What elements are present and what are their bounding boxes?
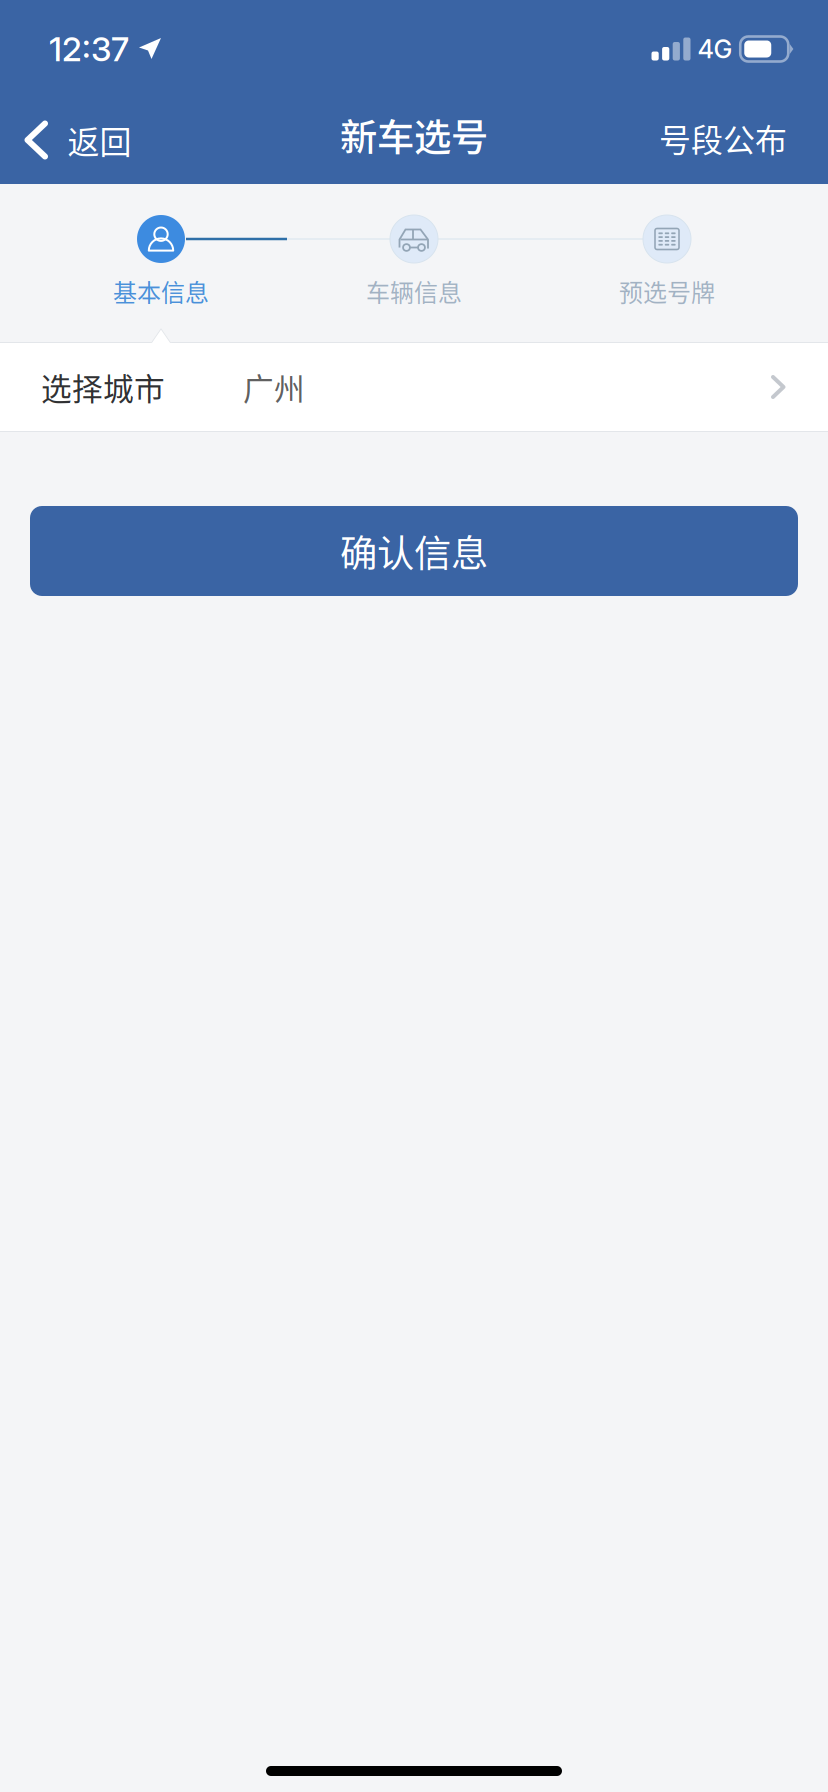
- staticText: 新车选号: [340, 108, 488, 162]
- staticText: 12:37: [49, 29, 129, 69]
- button[interactable]: 号段公布: [637, 91, 828, 185]
- staticText: 确认信息: [340, 524, 488, 578]
- staticText: 号段公布: [659, 115, 787, 161]
- staticText: 返回: [67, 117, 131, 163]
- button[interactable]: 选择城市: [0, 343, 828, 431]
- button[interactable]: 确认信息: [30, 506, 798, 596]
- staticText: 车辆信息: [366, 274, 462, 308]
- staticText: 预选号牌: [619, 274, 715, 308]
- staticText: 广州: [243, 365, 305, 409]
- button[interactable]: 返回: [0, 93, 149, 187]
- staticText: 基本信息: [113, 274, 209, 308]
- staticText: 4G: [697, 34, 732, 64]
- staticText: 选择城市: [41, 365, 165, 409]
